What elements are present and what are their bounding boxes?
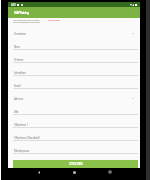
- staticText: 4:30: [11, 3, 16, 7]
- staticText: Prénom: [14, 58, 24, 62]
- button[interactable]: Ville: [8, 102, 140, 115]
- staticText: Nom: [14, 45, 20, 49]
- button[interactable]: Se connecter: [48, 18, 61, 21]
- staticText: Identifiant: [14, 71, 26, 75]
- staticText: Formation: [14, 32, 26, 36]
- button[interactable]: Nom: [8, 37, 140, 50]
- button[interactable]: Prénom: [8, 50, 140, 63]
- button[interactable]: Adresse: [8, 89, 140, 102]
- button[interactable]: Back: [34, 168, 44, 176]
- staticText: Email: [14, 84, 21, 88]
- staticText: Téléphone 2 (facultatif): [14, 136, 40, 140]
- button[interactable]: Mot de passe: [8, 141, 140, 154]
- staticText: Ville: [14, 110, 19, 114]
- button[interactable]: Home: [69, 168, 79, 176]
- staticText: S'INSCRIRE: [69, 162, 83, 166]
- staticText: Adresse: [14, 97, 24, 101]
- button[interactable]: Recent apps: [105, 168, 115, 176]
- button[interactable]: Identifiant: [8, 63, 140, 76]
- staticText: Mot de passe: [14, 149, 30, 153]
- button[interactable]: Téléphone 1: [8, 115, 140, 128]
- staticText: Vous disposez d'un compte? Sinon Enregis…: [13, 18, 40, 24]
- button[interactable]: S'INSCRIRE: [13, 160, 138, 168]
- button[interactable]: Téléphone 2 (facultatif): [8, 128, 140, 141]
- button[interactable]: Formation: [8, 24, 140, 37]
- staticText: Téléphone 1: [14, 123, 28, 127]
- staticText: WAP Training: [14, 11, 29, 15]
- button[interactable]: Email: [8, 76, 140, 89]
